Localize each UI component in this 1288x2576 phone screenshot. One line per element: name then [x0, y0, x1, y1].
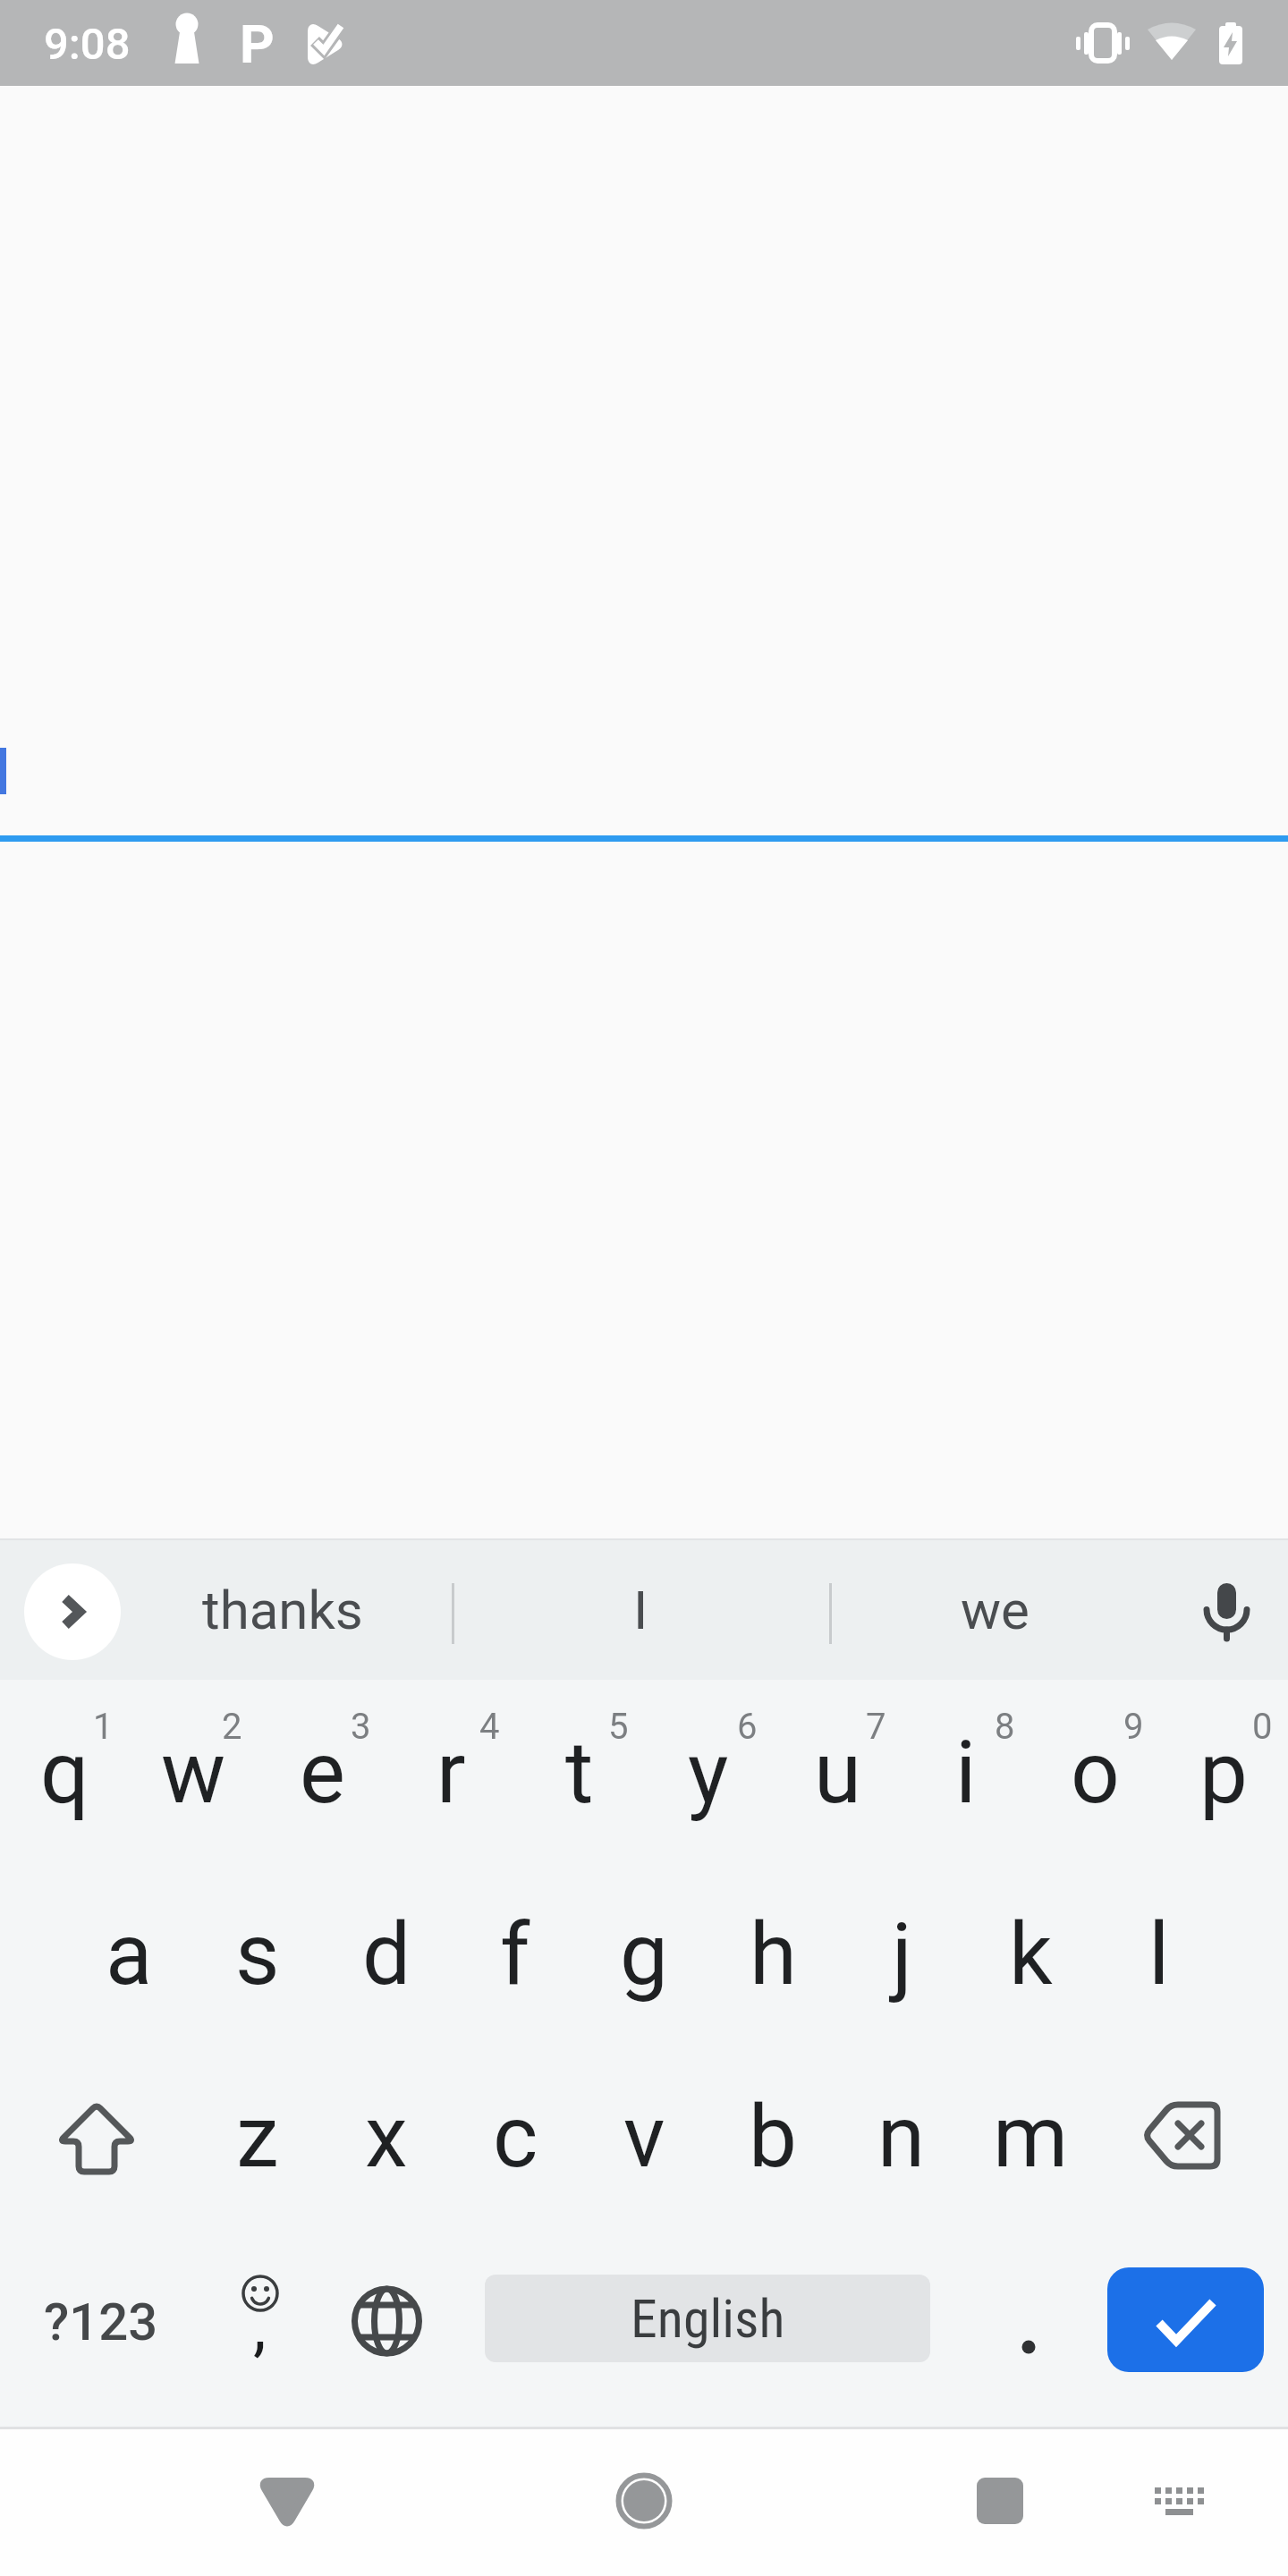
button[interactable] [966, 2227, 1095, 2410]
button[interactable] [644, 1680, 773, 1862]
staticText: b [749, 2087, 797, 2188]
staticText: ?123 [44, 2292, 158, 2352]
staticText: 3 [351, 1706, 371, 1748]
button[interactable] [24, 1563, 121, 1660]
staticText: l [1148, 1904, 1170, 2005]
button[interactable] [1123, 2465, 1239, 2563]
button[interactable] [555, 2456, 733, 2576]
button[interactable] [451, 2045, 580, 2227]
staticText: g [620, 1904, 668, 2005]
staticText: 5 [608, 1706, 629, 1748]
staticText: c [493, 2087, 538, 2188]
staticText: 8 [995, 1706, 1015, 1748]
staticText: a [106, 1904, 153, 2005]
staticText: r [436, 1723, 466, 1824]
button[interactable] [386, 1680, 515, 1862]
button[interactable] [902, 1680, 1030, 1862]
staticText: P [240, 13, 275, 75]
staticText: n [877, 2087, 926, 2188]
button[interactable] [830, 1538, 1158, 1680]
button[interactable] [0, 2045, 193, 2227]
staticText: z [236, 2087, 279, 2188]
staticText: thanks [202, 1579, 363, 1641]
staticText: I [633, 1579, 648, 1641]
button[interactable] [1095, 2045, 1288, 2227]
staticText: w [161, 1723, 226, 1824]
staticText: o [1071, 1723, 1120, 1824]
button[interactable] [193, 2045, 322, 2227]
button[interactable] [911, 2456, 1089, 2576]
staticText: 7 [866, 1706, 886, 1748]
staticText: m [993, 2087, 1069, 2188]
button[interactable] [193, 2227, 322, 2410]
button[interactable] [1159, 1680, 1288, 1862]
button[interactable] [708, 1862, 837, 2045]
staticText: x [365, 2087, 408, 2188]
staticText: p [1199, 1723, 1248, 1824]
button[interactable] [258, 1680, 386, 1862]
staticText: f [500, 1904, 530, 2005]
button[interactable] [130, 1538, 453, 1680]
staticText: j [892, 1904, 912, 2005]
staticText: y [688, 1723, 729, 1824]
button[interactable]: English [485, 2275, 930, 2362]
staticText: 4 [479, 1706, 500, 1748]
button[interactable] [322, 1862, 451, 2045]
staticText: 9 [1123, 1706, 1144, 1748]
staticText: we [961, 1579, 1030, 1641]
button[interactable] [580, 1862, 708, 2045]
button[interactable] [580, 2045, 708, 2227]
staticText: h [750, 1904, 797, 2005]
button[interactable] [966, 2045, 1095, 2227]
staticText: 9:08 [44, 19, 131, 70]
staticText: v [623, 2087, 665, 2188]
staticText: i [955, 1723, 977, 1824]
staticText: s [235, 1904, 280, 2005]
staticText: t [565, 1723, 594, 1824]
button[interactable] [837, 2045, 966, 2227]
button[interactable] [966, 1862, 1095, 2045]
staticText: u [814, 1723, 861, 1824]
button[interactable] [1030, 1680, 1159, 1862]
button[interactable] [193, 1862, 322, 2045]
button[interactable] [773, 1680, 902, 1862]
staticText: 6 [737, 1706, 758, 1748]
button[interactable] [0, 2227, 193, 2410]
button[interactable] [1158, 1538, 1288, 1680]
button[interactable] [453, 1538, 830, 1680]
button[interactable] [451, 1862, 580, 2045]
button[interactable] [1107, 2267, 1264, 2372]
staticText: q [40, 1723, 89, 1824]
staticText: 2 [222, 1706, 242, 1748]
button[interactable] [1095, 1862, 1224, 2045]
button[interactable] [837, 1862, 966, 2045]
button[interactable] [708, 2045, 837, 2227]
button[interactable] [322, 2227, 451, 2410]
staticText: e [300, 1723, 345, 1824]
staticText: k [1009, 1904, 1053, 2005]
button[interactable] [197, 2456, 376, 2576]
staticText: 0 [1252, 1706, 1273, 1748]
staticText: English [631, 2287, 785, 2350]
button[interactable] [129, 1680, 258, 1862]
button[interactable] [64, 1862, 193, 2045]
button[interactable] [322, 2045, 451, 2227]
staticText: , [253, 2287, 267, 2365]
staticText: d [362, 1904, 411, 2005]
staticText: 1 [93, 1706, 114, 1748]
button[interactable] [0, 1680, 129, 1862]
button[interactable] [515, 1680, 644, 1862]
